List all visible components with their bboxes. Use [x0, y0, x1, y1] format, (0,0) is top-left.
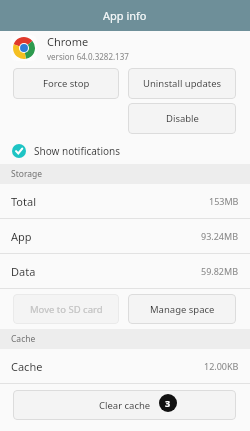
staticText: 93.24MB — [201, 230, 239, 242]
staticText: Storage — [11, 168, 43, 180]
staticText: 12.00KB — [204, 360, 239, 372]
button[interactable]: Chrome app icon — [0, 31, 250, 65]
staticText: 153MB — [209, 195, 239, 207]
staticText: Uninstall updates — [143, 77, 222, 90]
other: Chrome app icon — [11, 35, 37, 61]
staticText: Clear cache — [99, 399, 151, 412]
staticText: Data — [11, 264, 36, 279]
button[interactable]: Uninstall updates — [128, 68, 236, 99]
button[interactable]: Clear cache — [13, 390, 236, 420]
staticText: Cache — [11, 359, 43, 374]
staticText: Disable — [166, 112, 199, 125]
staticText: Force stop — [43, 77, 90, 90]
button[interactable]: Cache — [0, 349, 250, 383]
button[interactable]: Disable — [128, 103, 236, 134]
button[interactable]: Force stop — [13, 68, 119, 99]
button[interactable]: Data — [0, 254, 250, 288]
staticText: 59.82MB — [201, 265, 239, 277]
staticText: App info — [103, 8, 147, 23]
staticText: Manage space — [150, 303, 215, 316]
staticText: Move to SD card — [30, 303, 103, 316]
button[interactable]: Manage space — [128, 294, 236, 324]
other: Show notifications enabled — [12, 144, 26, 158]
button[interactable]: App — [0, 219, 250, 253]
staticText: 3 — [165, 397, 171, 409]
button[interactable]: Total — [0, 184, 250, 218]
button[interactable]: Move to SD card — [13, 294, 119, 324]
staticText: App — [11, 229, 32, 244]
staticText: Chrome — [47, 34, 89, 49]
staticText: Cache — [11, 333, 36, 345]
staticText: Show notifications — [34, 144, 121, 158]
staticText: Total — [11, 194, 36, 209]
button[interactable]: Show notifications enabled — [0, 137, 250, 164]
staticText: version 64.0.3282.137 — [47, 51, 129, 62]
